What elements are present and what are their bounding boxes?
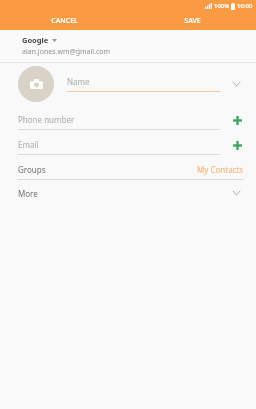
staticText: Email [18,139,39,150]
button[interactable]: Add Email [230,138,244,152]
staticText: CANCEL [51,16,78,26]
button[interactable]: CANCEL [0,11,128,30]
staticText: Name [67,76,90,87]
button[interactable]: Email [18,139,220,155]
staticText: 10:00 [237,2,253,10]
button[interactable]: Add Phone number [230,113,244,127]
staticText: alan.jones.wm@gmail.com [22,47,111,57]
button[interactable]: Add photo [18,66,54,102]
button[interactable]: Groups [0,155,256,180]
staticText: Groups [18,164,46,175]
button[interactable]: Phone number [18,114,220,130]
button[interactable]: Google [0,30,256,62]
button[interactable]: More [0,180,256,206]
staticText: Phone number [18,114,75,125]
button[interactable]: SAVE [128,11,256,30]
staticText: More [18,188,38,199]
staticText: SAVE [184,16,201,26]
staticText: Google [22,35,49,45]
button[interactable]: Expand name fields [228,76,244,92]
staticText: 100% [214,2,230,10]
staticText: My Contacts [197,164,244,175]
